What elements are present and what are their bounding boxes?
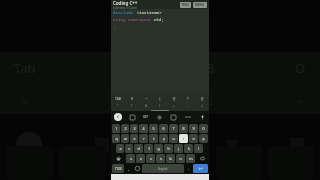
staticText: ?123 [115,167,122,171]
button[interactable]: Back [114,113,122,121]
staticText: 4 [142,126,145,131]
button[interactable]: y [159,134,168,143]
button[interactable]: q [112,134,120,143]
staticText: std; [151,17,164,23]
button[interactable]: RUN [180,2,191,8]
button[interactable]: + [167,102,181,110]
button[interactable]: . [185,164,192,173]
button[interactable]: Enter [193,164,208,173]
button[interactable]: 5 [149,124,158,133]
staticText: g [157,146,160,151]
staticText: () [131,96,134,101]
staticText: p [202,136,205,141]
staticText: TAB [115,96,122,101]
button[interactable]: 3 [130,124,138,133]
button[interactable]: o [189,134,198,143]
button[interactable]: m [186,154,195,163]
button[interactable]: w [121,134,129,143]
button[interactable]: English [142,164,184,173]
staticText: x [140,156,142,161]
button[interactable]: Language [133,164,141,173]
button[interactable]: a [116,144,124,153]
staticText: b [169,156,172,161]
button[interactable]: t [149,134,158,143]
button[interactable]: ? [181,94,195,102]
button[interactable]: Key [196,154,208,163]
staticText: t [153,136,155,141]
staticText: using namespace [113,17,151,23]
button[interactable]: 8 [179,124,188,133]
staticText: o [192,136,195,141]
staticText: {} [201,96,204,101]
staticText: s [128,146,130,151]
staticText: English [158,167,168,171]
staticText: q [115,136,118,141]
button[interactable]: More [184,113,192,121]
button[interactable]: Key [112,154,125,163]
staticText: ! [210,93,213,108]
button[interactable]: 0 [199,124,208,133]
button[interactable]: b [166,154,175,163]
button[interactable]: 6 [159,124,168,133]
button[interactable]: / [153,102,167,110]
button[interactable]: MENU [193,2,207,8]
button[interactable]: 1 [112,124,120,133]
staticText: | [159,96,161,101]
staticText: Coding C++ [113,0,138,6]
staticText: - [187,104,189,108]
button[interactable]: " [111,102,125,110]
staticText: w [124,136,127,141]
staticText: ··· [145,96,148,101]
button[interactable]: p [199,134,208,143]
button[interactable]: u [169,134,178,143]
button[interactable]: ··· [139,94,153,102]
staticText: GIF [143,115,149,119]
button[interactable]: h [164,144,173,153]
button[interactable]: ?123 [112,164,124,173]
staticText: \ [131,104,133,108]
staticText: i [183,136,184,141]
button[interactable]: k [184,144,193,153]
button[interactable]: () [125,94,139,102]
staticText: r [143,136,145,141]
button[interactable]: s [125,144,133,153]
button[interactable]: | [153,94,167,102]
button[interactable]: i [179,134,188,143]
button[interactable]: {} [195,94,209,102]
button[interactable]: , [125,164,132,173]
staticText: m [189,156,193,161]
button[interactable]: 9 [189,124,198,133]
button[interactable]: g [154,144,163,153]
button[interactable]: j [174,144,183,153]
button[interactable]: 7 [169,124,178,133]
button[interactable]: Clipboard [169,113,177,121]
button[interactable]: e [130,134,138,143]
button[interactable]: & [139,102,153,110]
button[interactable]: r [139,134,148,143]
staticText: l [198,146,199,151]
staticText: #include [113,10,134,16]
button[interactable]: z [126,154,135,163]
button[interactable]: f [144,144,153,153]
button[interactable]: Voice input [198,113,206,121]
staticText: 3 [133,126,136,131]
button[interactable]: n [176,154,185,163]
button[interactable]: Sticker [128,113,136,121]
staticText: j [178,146,179,151]
button[interactable]: 4 [139,124,148,133]
button[interactable]: \ [125,102,139,110]
button[interactable]: TAB [111,94,125,102]
button[interactable]: {} [167,94,181,102]
button[interactable]: Settings [155,113,163,121]
staticText: | [113,24,116,30]
staticText: RUN [182,3,189,7]
button[interactable]: 2 [121,124,129,133]
button[interactable]: d [134,144,143,153]
button[interactable]: c [146,154,155,163]
button[interactable]: = [195,102,209,110]
button[interactable]: l [194,144,203,153]
staticText: v [160,156,162,161]
button[interactable]: x [136,154,145,163]
button[interactable]: v [156,154,165,163]
